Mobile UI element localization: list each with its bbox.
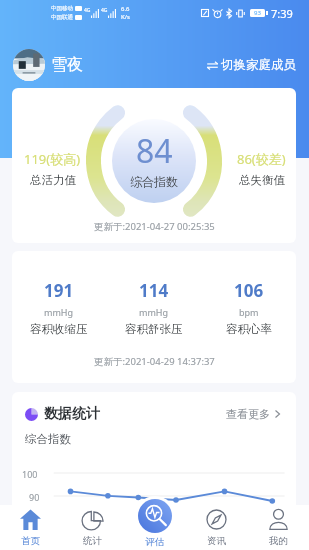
staticText: 容积舒张压 (125, 322, 183, 336)
staticText: 84 (136, 129, 173, 173)
staticText: 切换家庭成员 (221, 57, 296, 73)
button[interactable]: 统计 (61, 505, 123, 550)
button[interactable]: 我的 (247, 505, 309, 550)
staticText: 106 (234, 279, 264, 302)
staticText: 统计 (83, 535, 102, 547)
button[interactable]: 切换家庭成员 (205, 53, 298, 77)
staticText: 更新于:2021-04-27 00:25:35 (94, 220, 215, 233)
staticText: 查看更多 (226, 407, 270, 421)
staticText: 雪夜 (51, 55, 83, 75)
staticText: bpm (239, 306, 259, 318)
button[interactable]: 评估 (138, 499, 172, 533)
staticText: 评估 (145, 536, 164, 548)
button[interactable]: 资讯 (185, 505, 247, 550)
staticText: 6.6 (121, 5, 130, 13)
button[interactable]: Avatar (13, 49, 45, 81)
staticText: 综合指数 (25, 432, 71, 446)
staticText: 中国移动 (51, 5, 73, 12)
staticText: 191 (44, 279, 74, 302)
staticText: 中国联通 (51, 14, 73, 21)
staticText: 86(较差) (237, 150, 286, 168)
staticText: 7:39 (271, 6, 293, 21)
staticText: 4G (84, 7, 91, 14)
staticText: 我的 (269, 535, 288, 547)
staticText: 114 (139, 279, 169, 302)
staticText: 93 (254, 9, 261, 17)
staticText: 119(较高) (24, 150, 81, 168)
staticText: 4G (101, 7, 108, 14)
button[interactable]: 查看更多 (226, 407, 280, 421)
staticText: 资讯 (207, 535, 226, 547)
staticText: 首页 (21, 535, 40, 547)
button[interactable]: 191 (12, 251, 296, 383)
staticText: 90 (29, 491, 40, 503)
staticText: 总失衡值 (239, 173, 285, 187)
button[interactable]: 首页 (0, 505, 61, 550)
staticText: 综合指数 (130, 174, 178, 189)
staticText: 容积心率 (226, 322, 272, 336)
staticText: 100 (22, 468, 38, 480)
staticText: 容积收缩压 (30, 322, 88, 336)
staticText: 更新于:2021-04-29 14:37:37 (94, 355, 215, 368)
staticText: K/s (121, 13, 130, 21)
staticText: mmHg (139, 306, 169, 318)
staticText: 总活力值 (30, 173, 76, 187)
staticText: mmHg (44, 306, 74, 318)
staticText: 数据统计 (44, 405, 100, 423)
button[interactable]: 84 (12, 88, 296, 243)
